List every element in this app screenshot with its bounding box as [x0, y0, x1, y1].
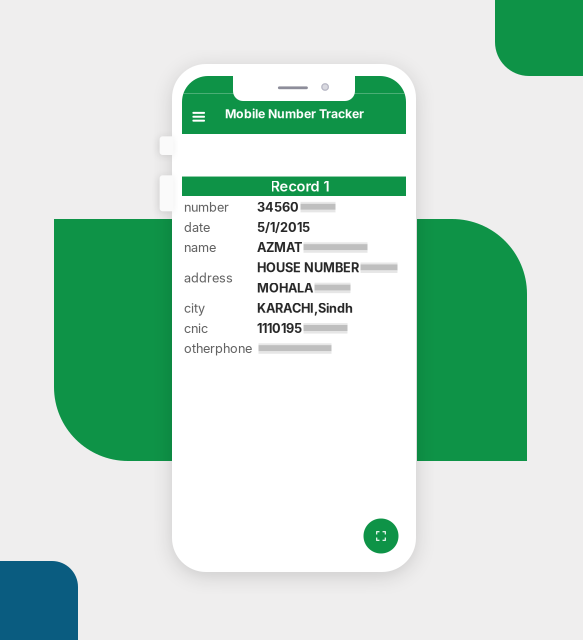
staticText: number: [184, 199, 229, 215]
staticText: Record 1: [270, 177, 329, 195]
staticText: otherphone: [184, 341, 252, 356]
button[interactable]: Scan: [363, 518, 398, 553]
button[interactable]: Menu: [188, 99, 210, 129]
staticText: Mobile Number Tracker: [225, 106, 364, 121]
staticText: 34560: [257, 199, 299, 215]
staticText: KARACHI,Sindh: [257, 300, 353, 316]
staticText: MOHALA: [257, 280, 313, 295]
staticText: HOUSE NUMBER: [257, 260, 359, 275]
staticText: city: [184, 300, 205, 316]
staticText: address: [184, 270, 233, 285]
staticText: 1110195: [257, 321, 302, 336]
staticText: cnic: [184, 321, 208, 336]
staticText: AZMAT: [257, 240, 302, 255]
staticText: 5/1/2015: [257, 220, 310, 235]
staticText: name: [184, 240, 216, 255]
staticText: date: [184, 220, 210, 235]
